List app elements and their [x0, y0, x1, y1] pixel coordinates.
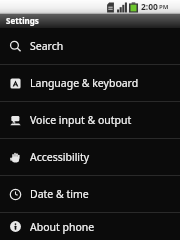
button[interactable]: Accessibility — [0, 139, 180, 176]
staticText: Voice input & output — [30, 113, 132, 127]
button[interactable]: Search — [0, 28, 180, 65]
staticText: Date & time — [30, 187, 89, 201]
staticText: Search — [30, 39, 64, 53]
staticText: PM — [159, 3, 169, 11]
button[interactable]: About phone — [0, 213, 180, 240]
staticText: 2:00 — [141, 1, 158, 13]
staticText: Settings — [6, 15, 39, 26]
staticText: Language & keyboard — [30, 76, 139, 90]
staticText: Accessibility — [30, 150, 90, 164]
button[interactable]: Date & time — [0, 176, 180, 213]
button[interactable]: Language & keyboard — [0, 65, 180, 102]
button[interactable]: Voice input & output — [0, 102, 180, 139]
staticText: About phone — [30, 220, 95, 234]
